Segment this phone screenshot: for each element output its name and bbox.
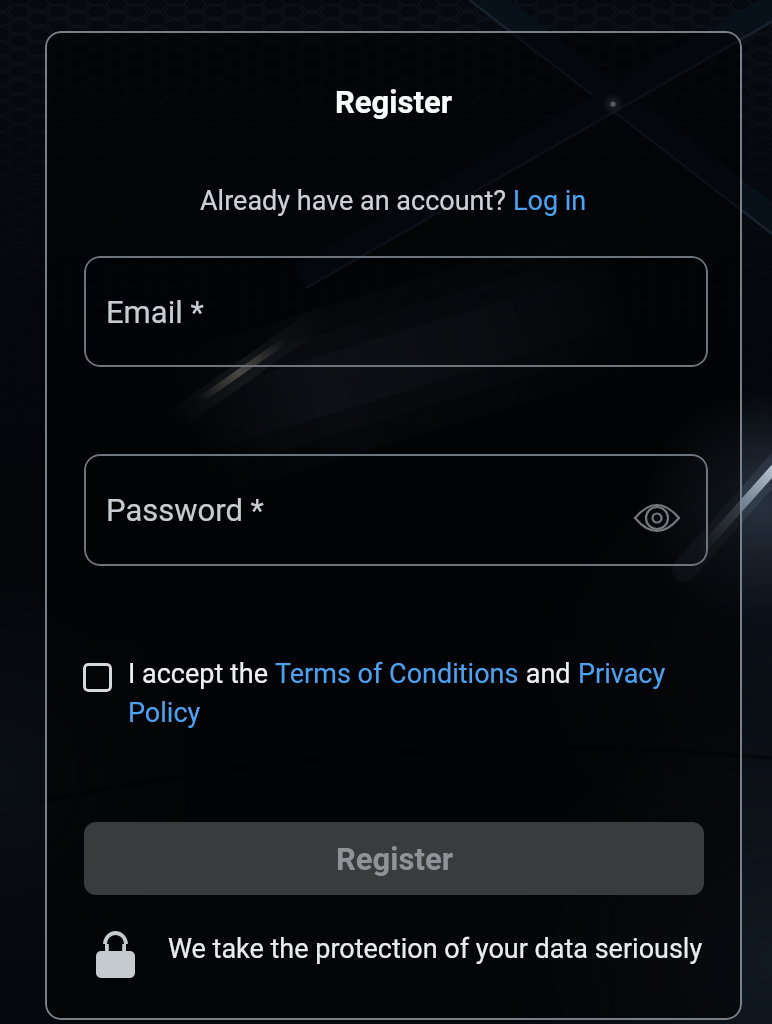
staticText: Email * [106, 294, 204, 330]
button[interactable]: Privacy [578, 658, 666, 690]
button[interactable]: Password * [84, 454, 708, 566]
staticText: I accept the [128, 658, 275, 690]
button[interactable]: Email * [84, 256, 708, 367]
staticText: Register [45, 84, 742, 120]
button[interactable]: Log in [513, 185, 587, 217]
button[interactable]: Terms of Conditions [275, 658, 519, 690]
staticText: Register [336, 841, 453, 877]
button[interactable]: Register [84, 822, 704, 895]
staticText: Password * [106, 492, 264, 528]
button[interactable] [83, 663, 112, 692]
staticText: We take the protection of your data seri… [168, 933, 703, 965]
staticText: Already have an account? [200, 185, 513, 217]
button[interactable]: Policy [128, 697, 201, 729]
button[interactable] [634, 504, 680, 532]
staticText: and [519, 658, 578, 690]
